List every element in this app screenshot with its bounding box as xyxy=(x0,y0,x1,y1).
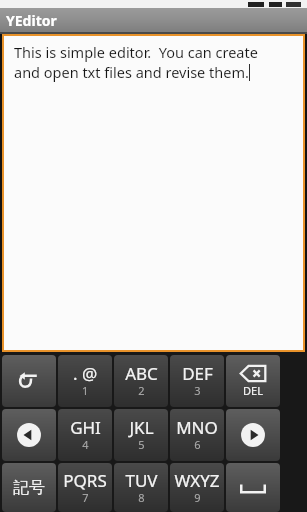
button[interactable]: MNO xyxy=(170,409,224,461)
staticText: 4 xyxy=(82,437,89,452)
staticText: DEL xyxy=(243,383,263,398)
button[interactable]: WXYZ xyxy=(170,463,224,512)
button[interactable]: ABC xyxy=(114,355,168,407)
staticText: MNO xyxy=(176,416,218,439)
staticText: JKL xyxy=(129,416,154,439)
staticText: . @ xyxy=(73,362,98,385)
staticText: GHI xyxy=(70,416,101,439)
staticText: This is simple editor. You can create xyxy=(14,42,258,62)
staticText: YEditor xyxy=(6,11,57,30)
button[interactable]: 記号 xyxy=(2,463,56,512)
staticText: PQRS xyxy=(63,469,107,492)
staticText: 2 xyxy=(138,383,145,398)
button[interactable]: JKL xyxy=(114,409,168,461)
staticText: 5 xyxy=(138,437,145,452)
staticText: 7 xyxy=(82,490,89,505)
button[interactable]: . @ xyxy=(58,355,112,407)
staticText: 3 xyxy=(194,383,201,398)
button[interactable]: GHI xyxy=(58,409,112,461)
staticText: 記号 xyxy=(13,478,45,498)
staticText: DEF xyxy=(182,362,213,385)
staticText: 1 xyxy=(82,383,89,398)
staticText: and open txt files and revise them. xyxy=(14,62,249,82)
button[interactable]: Space xyxy=(226,463,280,512)
button[interactable]: DEF xyxy=(170,355,224,407)
staticText: 9 xyxy=(194,490,201,505)
staticText: WXYZ xyxy=(174,469,220,492)
button[interactable]: Cursor left xyxy=(2,409,56,461)
staticText: TUV xyxy=(125,469,158,492)
staticText: 6 xyxy=(194,437,201,452)
button[interactable]: Cursor right xyxy=(226,409,280,461)
staticText: ABC xyxy=(125,362,158,385)
button[interactable]: TUV xyxy=(114,463,168,512)
button[interactable]: Delete xyxy=(226,355,280,407)
button[interactable]: PQRS xyxy=(58,463,112,512)
button[interactable]: Undo xyxy=(2,355,56,407)
staticText: 8 xyxy=(138,490,145,505)
